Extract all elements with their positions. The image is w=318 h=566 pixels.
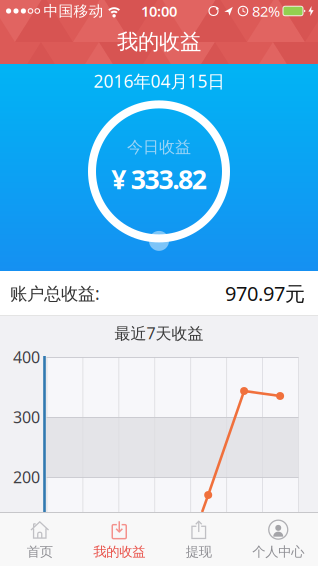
staticText: 300 bbox=[13, 406, 40, 428]
button[interactable]: 我的收益 bbox=[79, 513, 159, 566]
button[interactable]: 首页 bbox=[0, 513, 79, 566]
staticText: 最近7天收益 bbox=[114, 322, 203, 344]
staticText: 提现 bbox=[186, 544, 212, 560]
staticText: 200 bbox=[13, 466, 40, 488]
staticText: 账户总收益: bbox=[10, 282, 100, 305]
staticText: 我的收益 bbox=[117, 29, 201, 55]
staticText: 首页 bbox=[27, 544, 53, 560]
button[interactable]: 提现 bbox=[159, 513, 238, 566]
staticText: ¥ 333.82 bbox=[111, 161, 207, 196]
staticText: 2016年04月15日 bbox=[93, 69, 224, 92]
button[interactable]: 个人中心 bbox=[238, 513, 318, 566]
staticText: 970.97元 bbox=[225, 280, 305, 306]
staticText: 我的收益 bbox=[93, 544, 145, 560]
staticText: 400 bbox=[13, 346, 40, 368]
staticText: 个人中心 bbox=[252, 544, 304, 560]
staticText: 今日收益 bbox=[127, 137, 191, 157]
staticText: 82% bbox=[252, 1, 280, 21]
staticText: 中国移动 bbox=[44, 2, 104, 20]
staticText: 10:00 bbox=[141, 1, 177, 21]
